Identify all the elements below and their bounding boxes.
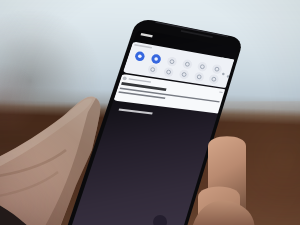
button[interactable]: Hand holding a phone showing the notific… <box>0 0 300 225</box>
